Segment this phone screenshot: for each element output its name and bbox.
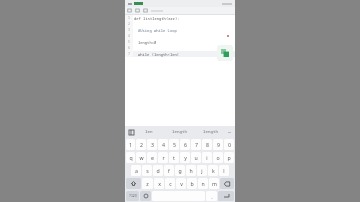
button[interactable]: t <box>169 152 179 163</box>
button[interactable]: f <box>164 165 174 176</box>
staticText: e <box>151 154 154 161</box>
staticText: def listlength(arr): <box>134 16 180 21</box>
button[interactable]: 1 <box>126 139 135 150</box>
button[interactable]: len <box>134 126 164 137</box>
button[interactable]: 8 <box>202 139 212 150</box>
staticText: v <box>180 180 183 187</box>
staticText: q <box>129 154 133 161</box>
button[interactable]: l <box>219 165 229 176</box>
button[interactable]: w <box>136 152 146 163</box>
staticText: u <box>194 154 198 161</box>
button[interactable]: More options <box>226 129 232 135</box>
staticText: s <box>146 167 149 174</box>
button[interactable]: Symbols <box>126 191 139 201</box>
button[interactable]: a <box>131 165 141 176</box>
button[interactable]: Clipboard <box>128 129 134 135</box>
button[interactable]: d <box>153 165 163 176</box>
staticText: o <box>216 154 220 161</box>
button[interactable]: o <box>213 152 223 163</box>
button[interactable]: 6 <box>180 139 190 150</box>
staticText: 2 <box>128 22 130 26</box>
staticText: 9 <box>217 141 220 148</box>
staticText: l <box>223 167 225 174</box>
staticText: b <box>190 180 194 187</box>
staticText: w <box>139 154 144 161</box>
button[interactable]: 2 <box>136 139 146 150</box>
staticText: . <box>211 193 213 200</box>
button[interactable]: 7 <box>191 139 201 150</box>
staticText: 7 <box>195 141 198 148</box>
button[interactable]: m <box>209 178 219 189</box>
staticText: 5 <box>173 141 176 148</box>
staticText: 2 <box>140 141 143 148</box>
staticText: p <box>227 154 231 161</box>
button[interactable]: length <box>195 126 226 137</box>
staticText: m <box>212 180 217 187</box>
button[interactable]: 0 <box>224 139 234 150</box>
staticText: x <box>158 180 161 187</box>
button[interactable]: k <box>208 165 218 176</box>
staticText: y <box>184 154 187 161</box>
staticText: while (length<len( <box>138 52 180 57</box>
staticText: length=0 <box>138 40 157 45</box>
button[interactable]: z <box>142 178 153 189</box>
staticText: t <box>173 154 175 161</box>
button[interactable]: length <box>164 126 195 137</box>
staticText: 7 <box>128 52 130 56</box>
staticText: 1 <box>129 141 132 148</box>
staticText: h <box>189 167 193 174</box>
staticText: 5 <box>128 40 130 44</box>
staticText: 3 <box>151 141 154 148</box>
staticText: 0 <box>228 141 231 148</box>
staticText: i <box>206 154 208 161</box>
button[interactable]: Undo <box>127 8 132 13</box>
staticText: 4 <box>162 141 165 148</box>
staticText: ⋯ <box>228 130 231 135</box>
button[interactable]: i <box>202 152 212 163</box>
button[interactable]: Shift <box>126 178 141 189</box>
button[interactable]: Backspace <box>220 178 234 189</box>
button[interactable]: c <box>165 178 175 189</box>
button[interactable]: b <box>187 178 197 189</box>
staticText: 8 <box>206 141 209 148</box>
button[interactable]: r <box>158 152 168 163</box>
button[interactable]: Emoji <box>140 191 151 201</box>
button[interactable]: Copy code <box>217 45 233 61</box>
staticText: k <box>212 167 215 174</box>
staticText: n <box>201 180 205 187</box>
button[interactable]: q <box>126 152 135 163</box>
button[interactable]: j <box>197 165 207 176</box>
button[interactable]: Enter <box>218 191 234 201</box>
staticText: f <box>168 167 170 174</box>
button[interactable]: Run <box>143 8 148 13</box>
staticText: a <box>135 167 138 174</box>
staticText: r <box>162 154 165 161</box>
button[interactable]: x <box>154 178 164 189</box>
staticText: ?123 <box>129 194 137 198</box>
button[interactable]: e <box>147 152 157 163</box>
staticText: 6 <box>184 141 187 148</box>
staticText: 3 <box>128 28 130 32</box>
staticText: #Using while Loop <box>138 28 177 33</box>
button[interactable]: h <box>186 165 196 176</box>
button[interactable]: s <box>142 165 152 176</box>
button[interactable]: v <box>176 178 186 189</box>
staticText: j <box>201 167 203 174</box>
button[interactable]: n <box>198 178 208 189</box>
button[interactable]: p <box>224 152 234 163</box>
button[interactable]: 9 <box>213 139 223 150</box>
staticText: d <box>156 167 160 174</box>
staticText: 1 <box>128 16 130 20</box>
button[interactable]: y <box>180 152 190 163</box>
button[interactable]: 4 <box>158 139 168 150</box>
button[interactable]: g <box>175 165 185 176</box>
button[interactable]: u <box>191 152 201 163</box>
button[interactable]: Redo <box>135 8 140 13</box>
staticText: len <box>145 129 153 135</box>
staticText: length <box>172 129 188 135</box>
button[interactable]: . <box>206 191 217 201</box>
button[interactable]: 5 <box>169 139 179 150</box>
staticText: 4 <box>128 34 130 38</box>
button[interactable]: 3 <box>147 139 157 150</box>
